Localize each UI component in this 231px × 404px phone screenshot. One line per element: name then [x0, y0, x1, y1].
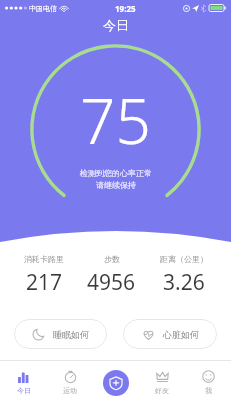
staticText: 距离（公里）	[160, 254, 208, 264]
button[interactable]: 今日	[0, 361, 47, 404]
button[interactable]: 好友	[139, 361, 185, 404]
staticText: 3.26	[163, 268, 205, 297]
button[interactable]: 我	[185, 361, 231, 404]
button[interactable]: 睡眠如何	[14, 319, 107, 349]
staticText: 运动	[63, 386, 77, 395]
staticText: 好友	[155, 386, 169, 395]
staticText: 217	[26, 268, 63, 297]
staticText: 今日	[17, 386, 31, 395]
staticText: 我	[205, 386, 212, 395]
staticText: 4956	[87, 268, 136, 297]
staticText: 心脏如何	[163, 329, 199, 340]
staticText: 今日	[103, 17, 129, 33]
staticText: 检测到您的心率正常	[80, 168, 152, 178]
staticText: 步数	[104, 254, 120, 264]
staticText: 睡眠如何	[53, 329, 89, 340]
staticText: 消耗卡路里	[24, 254, 64, 264]
staticText: 75	[80, 78, 151, 162]
button[interactable]: 心脏如何	[123, 319, 217, 349]
button[interactable]: 运动	[47, 361, 93, 404]
button[interactable]: Measure heart rate	[103, 370, 129, 396]
staticText: 19:25	[115, 3, 136, 14]
staticText: 中国电信	[29, 4, 57, 13]
staticText: 请继续保持	[96, 180, 136, 190]
